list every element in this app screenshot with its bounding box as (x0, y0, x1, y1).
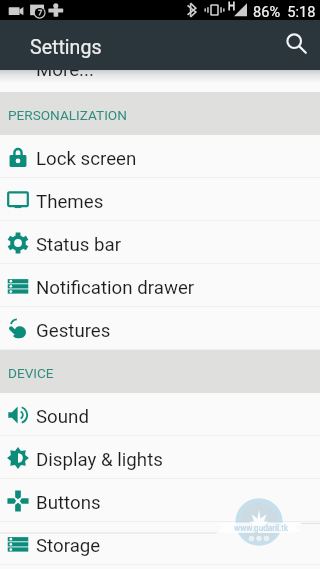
button[interactable]: Status bar (0, 221, 320, 264)
button[interactable]: Lock screen (0, 135, 320, 178)
button[interactable]: Storage (0, 522, 320, 565)
button[interactable]: Notification drawer (0, 264, 320, 307)
staticText: Status bar (36, 234, 122, 256)
button[interactable]: Buttons (0, 479, 320, 522)
staticText: Buttons (36, 492, 101, 514)
button[interactable]: Display & lights (0, 436, 320, 479)
button[interactable]: Sound (0, 393, 320, 436)
staticText: Sound (36, 406, 89, 428)
staticText: Settings (30, 36, 102, 59)
staticText: Gestures (36, 320, 111, 342)
staticText: Storage (36, 535, 101, 557)
staticText: 86% 5:18 (253, 3, 316, 20)
staticText: DEVICE (8, 365, 54, 381)
staticText: Notification drawer (36, 277, 195, 299)
button[interactable]: Gestures (0, 307, 320, 350)
button[interactable]: Search (275, 20, 320, 70)
staticText: Themes (36, 191, 104, 213)
staticText: More... (36, 59, 94, 81)
staticText: 7 (38, 8, 43, 17)
button[interactable]: More... (0, 46, 320, 89)
button[interactable]: Themes (0, 178, 320, 221)
staticText: Display & lights (36, 449, 163, 471)
staticText: PERSONALIZATION (8, 107, 127, 123)
staticText: www.gudaril.tk (234, 523, 289, 533)
staticText: Lock screen (36, 148, 137, 170)
staticText: H (228, 1, 236, 13)
